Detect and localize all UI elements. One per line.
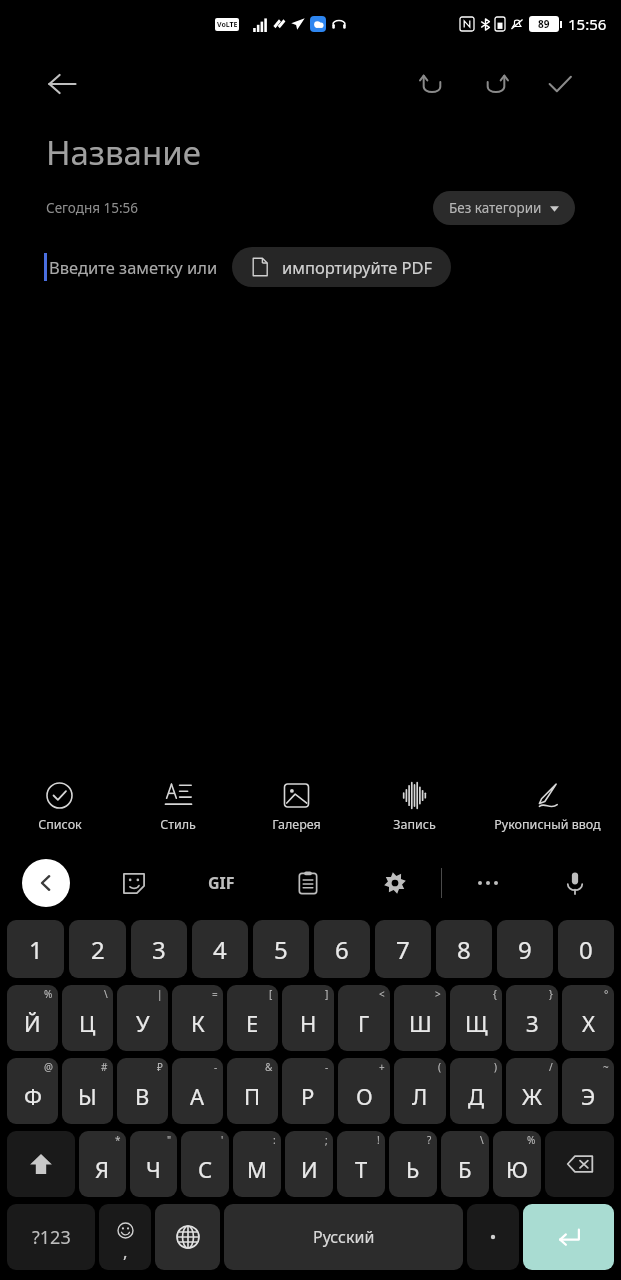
button[interactable]: ): [450, 1058, 502, 1124]
staticText: >: [435, 987, 441, 1001]
button[interactable]: 1: [7, 920, 64, 978]
staticText: Ж: [522, 1081, 542, 1111]
button[interactable]: \: [441, 1131, 489, 1197]
button[interactable]: ?: [389, 1131, 437, 1197]
button[interactable]: 4: [192, 920, 248, 978]
staticText: }: [549, 987, 553, 1001]
staticText: Ф: [24, 1081, 42, 1111]
button[interactable]: @: [7, 1058, 58, 1124]
staticText: Без категории: [449, 199, 542, 217]
button[interactable]: Enter: [523, 1204, 614, 1270]
staticText: Русский: [313, 1226, 375, 1248]
button[interactable]: More options: [466, 861, 510, 905]
staticText: Я: [95, 1154, 110, 1184]
button[interactable]: Emoji: [99, 1204, 151, 1270]
button[interactable]: *: [79, 1131, 126, 1197]
button[interactable]: ~: [562, 1058, 614, 1124]
staticText: Л: [412, 1081, 428, 1111]
button[interactable]: ;: [285, 1131, 333, 1197]
button[interactable]: }: [506, 985, 558, 1051]
staticText: :: [273, 1133, 276, 1147]
button[interactable]: %: [493, 1131, 541, 1197]
button[interactable]: Undo: [405, 57, 459, 111]
staticText: \: [480, 1133, 484, 1147]
button[interactable]: Clipboard: [286, 861, 330, 905]
button[interactable]: [: [227, 985, 278, 1051]
button[interactable]: импортируйте PDF: [232, 247, 451, 287]
button[interactable]: 3: [131, 920, 187, 978]
button[interactable]: Redo: [469, 57, 523, 111]
staticText: И: [301, 1154, 318, 1184]
button[interactable]: #: [62, 1058, 113, 1124]
button[interactable]: /: [506, 1058, 558, 1124]
button[interactable]: \: [62, 985, 113, 1051]
staticText: У: [136, 1008, 150, 1038]
button[interactable]: °: [562, 985, 614, 1051]
button[interactable]: (: [394, 1058, 446, 1124]
button[interactable]: Back: [34, 56, 90, 112]
staticText: 3: [152, 933, 166, 966]
button[interactable]: Стиль: [119, 764, 237, 850]
button[interactable]: Period: [467, 1204, 519, 1270]
button[interactable]: -: [282, 1058, 334, 1124]
button[interactable]: Список: [0, 764, 119, 850]
button[interactable]: 5: [253, 920, 309, 978]
button[interactable]: GIF: [199, 861, 243, 905]
button[interactable]: Backspace: [545, 1131, 614, 1197]
button[interactable]: !: [337, 1131, 385, 1197]
button[interactable]: Collapse toolbar: [22, 859, 70, 907]
button[interactable]: ': [181, 1131, 229, 1197]
staticText: Т: [355, 1154, 368, 1184]
button[interactable]: 8: [436, 920, 492, 978]
staticText: %: [527, 1133, 536, 1147]
button[interactable]: %: [7, 985, 58, 1051]
button[interactable]: 0: [558, 920, 614, 978]
button[interactable]: Save: [533, 57, 587, 111]
button[interactable]: Русский: [224, 1204, 463, 1270]
staticText: ?: [427, 1133, 432, 1147]
staticText: ': [221, 1133, 224, 1147]
button[interactable]: Settings: [373, 861, 417, 905]
button[interactable]: =: [172, 985, 223, 1051]
button[interactable]: Рукописный ввод: [473, 764, 621, 850]
staticText: Список: [38, 816, 82, 833]
staticText: Ю: [506, 1154, 528, 1184]
button[interactable]: |: [117, 985, 168, 1051]
button[interactable]: +: [338, 1058, 390, 1124]
button[interactable]: ₽: [117, 1058, 168, 1124]
button[interactable]: :: [233, 1131, 281, 1197]
staticText: ": [167, 1133, 172, 1147]
staticText: 0: [579, 933, 593, 966]
button[interactable]: 9: [497, 920, 553, 978]
button[interactable]: Без категории: [433, 191, 575, 225]
button[interactable]: -: [172, 1058, 223, 1124]
button[interactable]: 7: [375, 920, 431, 978]
button[interactable]: Shift: [7, 1131, 75, 1197]
staticText: Н: [300, 1008, 317, 1038]
button[interactable]: >: [394, 985, 446, 1051]
staticText: Введите заметку или: [49, 256, 218, 278]
button[interactable]: ": [130, 1131, 177, 1197]
staticText: ): [494, 1060, 497, 1074]
staticText: П: [244, 1081, 261, 1111]
button[interactable]: 6: [314, 920, 370, 978]
staticText: 4: [213, 933, 227, 966]
staticText: 15:56: [568, 14, 607, 34]
button[interactable]: 2: [69, 920, 126, 978]
button[interactable]: {: [450, 985, 502, 1051]
button[interactable]: ?123: [7, 1204, 95, 1270]
button[interactable]: Запись: [355, 764, 473, 850]
button[interactable]: <: [338, 985, 390, 1051]
button[interactable]: Галерея: [237, 764, 355, 850]
button[interactable]: &: [227, 1058, 278, 1124]
staticText: Ь: [406, 1154, 420, 1184]
button[interactable]: Change language: [155, 1204, 220, 1270]
staticText: 6: [335, 933, 349, 966]
button[interactable]: Voice input: [553, 861, 597, 905]
staticText: VoLTE: [217, 20, 238, 30]
button[interactable]: Stickers: [112, 861, 156, 905]
staticText: !: [377, 1133, 380, 1147]
staticText: Щ: [465, 1008, 488, 1038]
staticText: А: [190, 1081, 205, 1111]
button[interactable]: ]: [282, 985, 334, 1051]
